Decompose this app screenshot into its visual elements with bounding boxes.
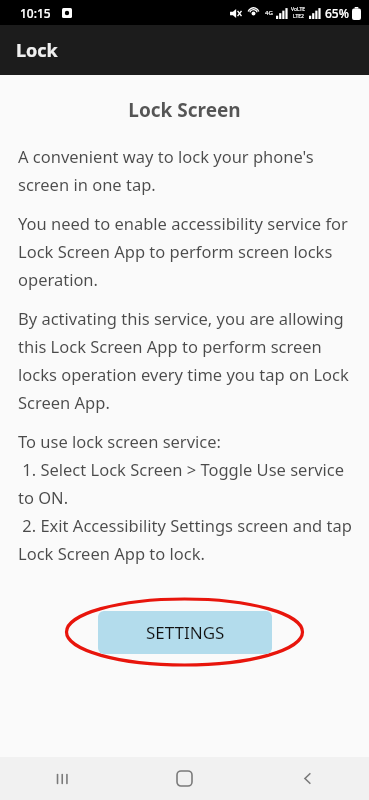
- button[interactable]: Back: [246, 757, 369, 800]
- staticText: VoLTE: [291, 6, 306, 13]
- button[interactable]: SETTINGS: [98, 611, 272, 654]
- staticText: Lock: [16, 38, 58, 63]
- staticText: LTE2: [293, 13, 304, 20]
- staticText: Lock Screen: [0, 97, 369, 123]
- staticText: You need to enable accessibility service…: [18, 212, 355, 290]
- staticText: 65%: [325, 5, 349, 21]
- button[interactable]: Recents: [0, 757, 123, 800]
- staticText: By activating this service, you are allo…: [18, 307, 355, 413]
- staticText: To use lock screen service: 1. Select Lo…: [18, 430, 355, 564]
- staticText: SETTINGS: [146, 621, 225, 644]
- staticText: 10:15: [20, 5, 51, 21]
- staticText: A convenient way to lock your phone's sc…: [18, 145, 355, 195]
- staticText: 4G: [265, 9, 273, 17]
- button[interactable]: Home: [123, 757, 246, 800]
